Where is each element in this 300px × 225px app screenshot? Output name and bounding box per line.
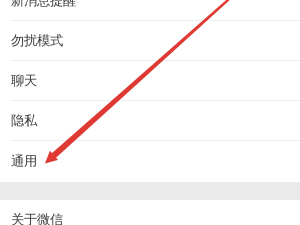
button[interactable]: 新消息提醒 [0,0,300,21]
staticText: 通用 [11,153,37,169]
staticText: 新消息提醒 [11,0,76,9]
staticText: 勿扰模式 [11,32,63,49]
button[interactable]: 关于微信 [0,200,300,225]
button[interactable]: 通用 [0,141,300,182]
button[interactable]: 隐私 [0,101,300,141]
button[interactable]: 聊天 [0,61,300,101]
staticText: 关于微信 [11,211,63,225]
button[interactable]: 勿扰模式 [0,21,300,61]
staticText: 隐私 [11,112,37,129]
staticText: 聊天 [11,72,37,89]
